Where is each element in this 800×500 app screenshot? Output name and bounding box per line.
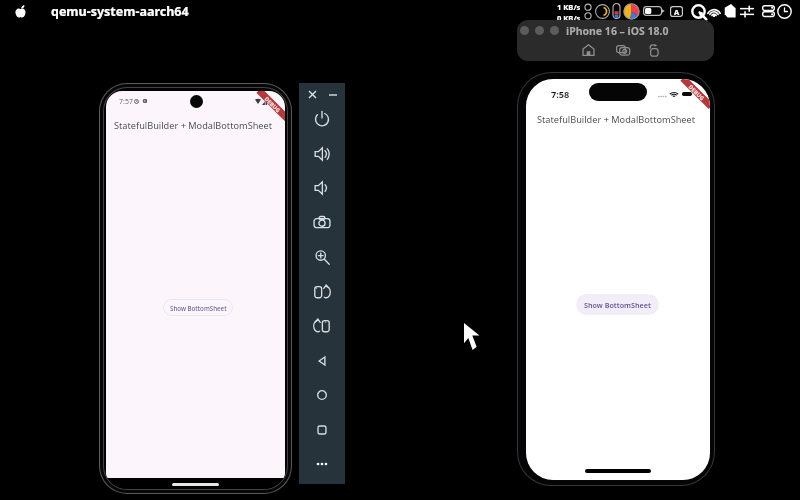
staticText: DEBUG bbox=[263, 95, 283, 114]
button[interactable]: Power bbox=[310, 107, 334, 131]
button[interactable]: Back bbox=[310, 349, 334, 373]
staticText: A bbox=[674, 7, 680, 17]
staticText: StatefulBuilder + ModalBottomSheet bbox=[537, 113, 696, 126]
button[interactable]: Close bbox=[305, 87, 320, 102]
button[interactable]: Close window bbox=[519, 25, 529, 35]
other: Apple menu bbox=[14, 5, 27, 18]
staticText: Show BottomSheet bbox=[170, 304, 227, 312]
staticText: qemu-system-aarch64 bbox=[51, 3, 189, 20]
button[interactable]: Home bbox=[310, 383, 334, 407]
button[interactable]: Zoom bbox=[310, 245, 334, 269]
button[interactable]: Minimise window bbox=[534, 25, 544, 35]
staticText: Show BottomSheet bbox=[584, 300, 651, 310]
staticText: iPhone 16 – iOS 18.0 bbox=[566, 24, 669, 38]
button[interactable]: Minimise bbox=[325, 87, 340, 102]
staticText: 0 KB/s bbox=[557, 13, 581, 20]
button[interactable]: Recents bbox=[310, 418, 334, 442]
staticText: 7:57 bbox=[119, 97, 133, 107]
staticText: 7:58 bbox=[551, 88, 570, 101]
button[interactable]: Volume down bbox=[310, 176, 334, 200]
staticText: StatefulBuilder + ModalBottomSheet bbox=[114, 119, 273, 132]
button[interactable]: Show BottomSheet bbox=[163, 299, 233, 316]
staticText: DEBUG bbox=[687, 83, 707, 102]
button[interactable]: Screenshot bbox=[310, 211, 334, 235]
button[interactable]: Rotate right bbox=[310, 314, 334, 338]
button[interactable]: Rotate bbox=[646, 42, 662, 58]
button[interactable]: Zoom window bbox=[549, 25, 559, 35]
button[interactable]: Screenshot bbox=[615, 42, 631, 58]
staticText: 1 KB/s bbox=[557, 2, 581, 12]
button[interactable]: Home bbox=[580, 42, 596, 58]
button[interactable]: Rotate left bbox=[310, 280, 334, 304]
button[interactable]: Show BottomSheet bbox=[576, 294, 659, 315]
button[interactable]: Volume up bbox=[310, 142, 334, 166]
button[interactable]: More bbox=[310, 452, 334, 476]
